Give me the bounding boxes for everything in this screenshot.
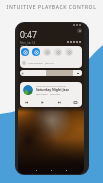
staticText: Saturday Evening Session	[36, 84, 66, 87]
button[interactable]: Toggle 2	[43, 48, 51, 56]
staticText: Now playing	[28, 61, 43, 64]
button[interactable]: Settings	[77, 28, 82, 33]
button[interactable]: Play	[40, 100, 45, 105]
staticText: Jazz FM	[45, 61, 54, 64]
button[interactable]: Cast	[73, 100, 78, 105]
button[interactable]: Toggle 3	[54, 48, 62, 56]
staticText: 0:47	[20, 29, 37, 41]
staticText: Saturday Night Jazz	[36, 87, 69, 92]
button[interactable]: Now playing	[22, 59, 80, 66]
button[interactable]: Toggle 0	[21, 48, 29, 56]
button[interactable]: Saturday Evening Session	[20, 82, 82, 107]
staticText: Mon, Jun 14	[20, 41, 35, 45]
button[interactable]: Next	[57, 100, 62, 105]
button[interactable]: Toggle 1	[32, 48, 40, 56]
staticText: Jazz Radio · Live now	[36, 92, 60, 95]
button[interactable]: Previous	[24, 100, 29, 105]
staticText: 70° Clear	[20, 45, 32, 49]
staticText: INTUITIVE PLAYBACK CONTROL	[0, 4, 103, 11]
button[interactable]: Toggle 4	[65, 48, 73, 56]
button[interactable]: Brightness	[20, 70, 82, 76]
